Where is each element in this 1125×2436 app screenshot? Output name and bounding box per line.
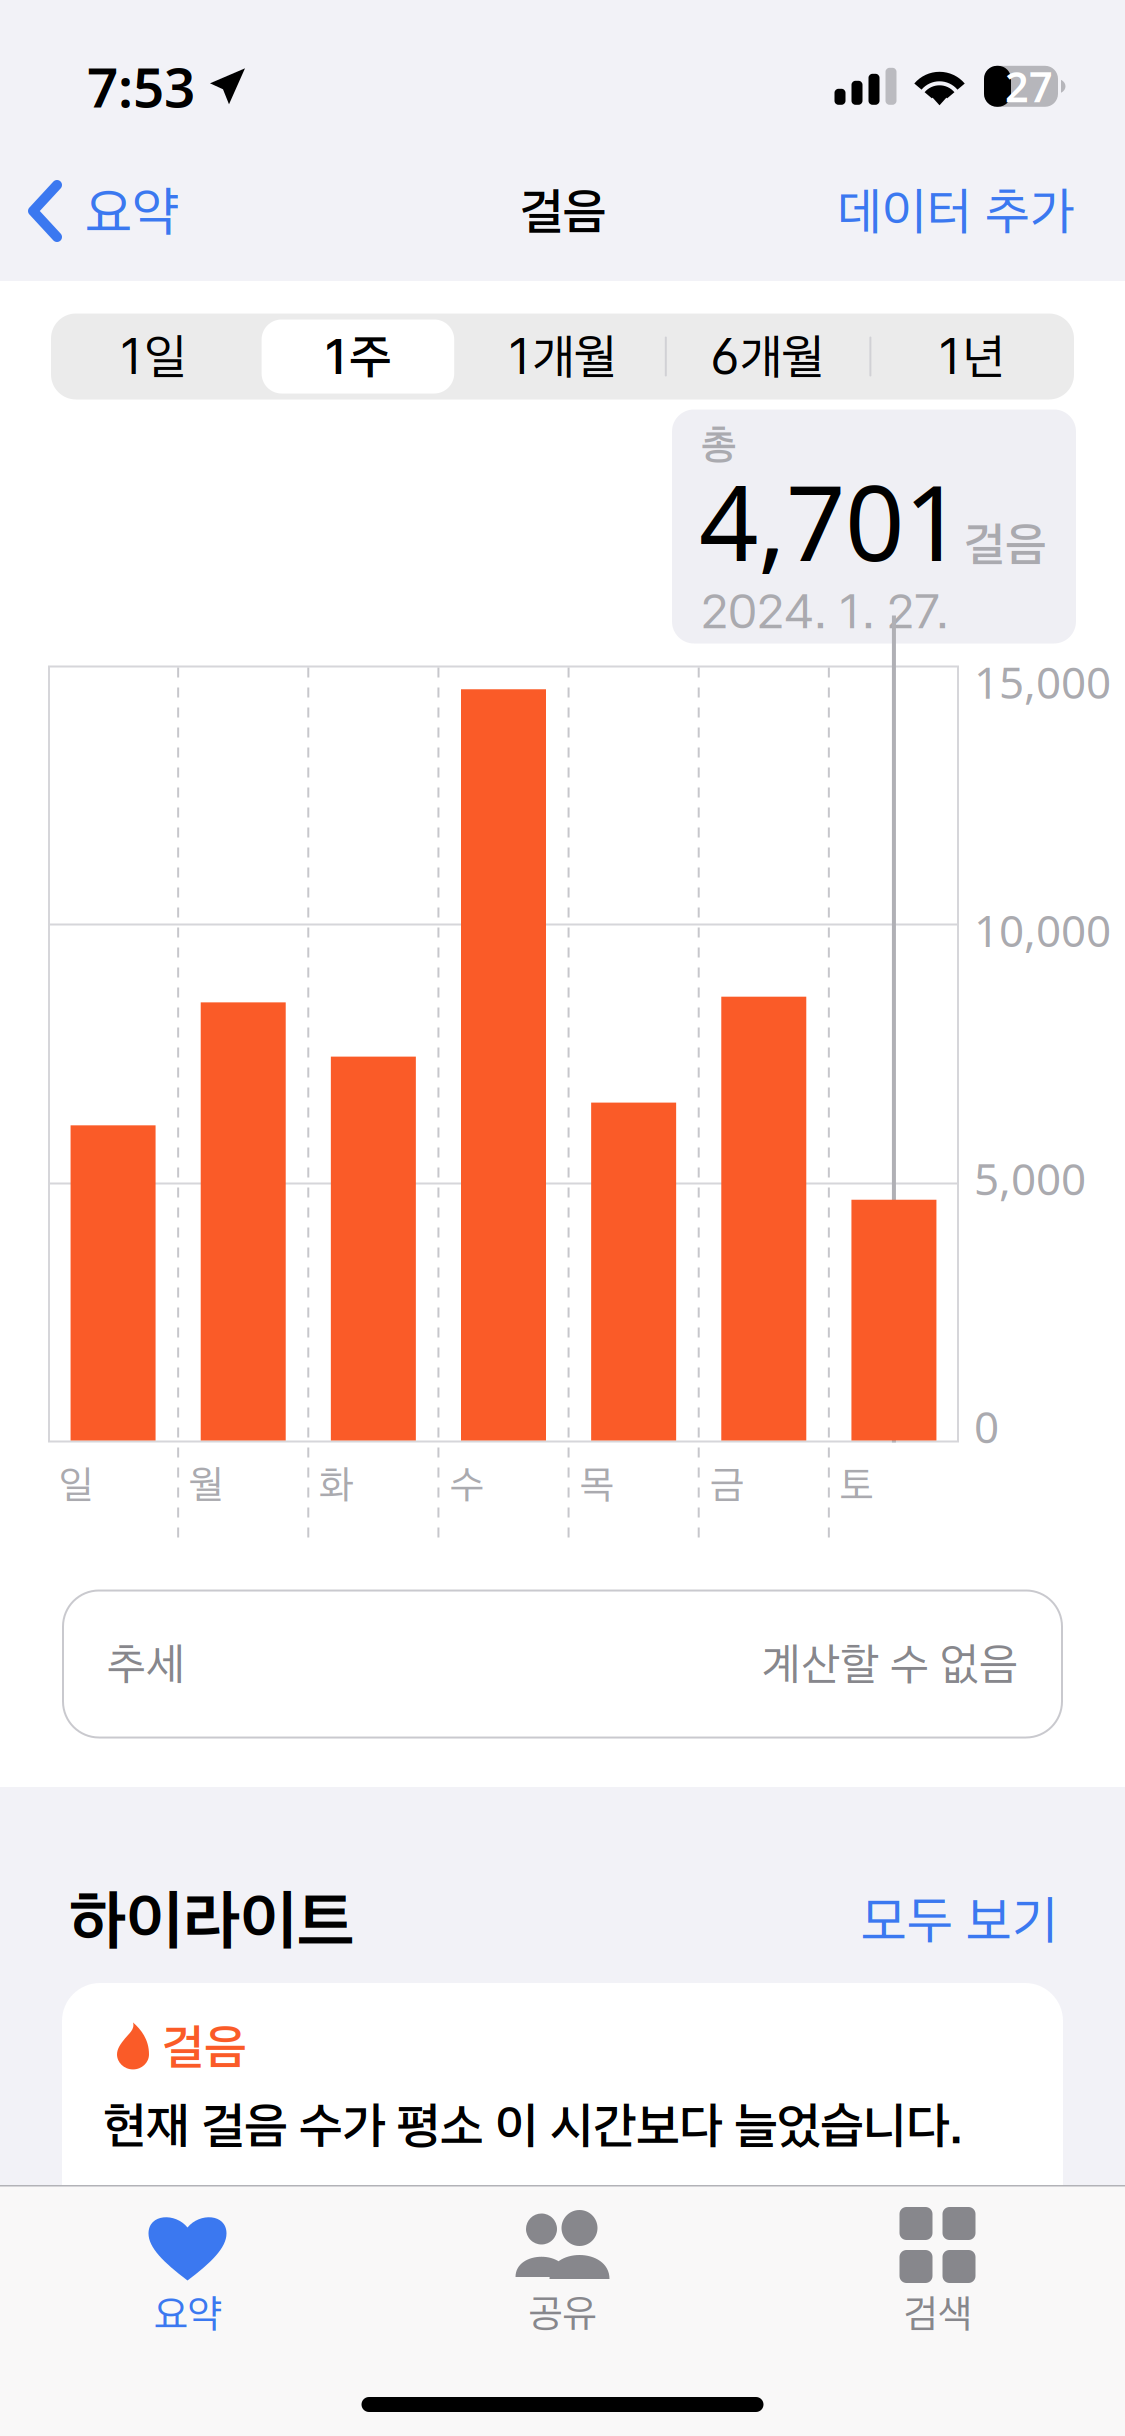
button[interactable]: 검색 (750, 2204, 1125, 2341)
staticText: 2024. 1. 27. (701, 582, 949, 640)
button[interactable]: 요약 (0, 2204, 375, 2341)
staticText: 5,000 (974, 1149, 1086, 1207)
button[interactable]: 1주 (256, 313, 460, 399)
button[interactable]: 1년 (869, 313, 1074, 399)
button[interactable]: 추세 (0, 1542, 1125, 1787)
staticText: 검색 (903, 2289, 971, 2337)
staticText: 10,000 (974, 901, 1111, 959)
staticText: 목 (580, 1460, 614, 1508)
staticText: 데이터 추가 (837, 180, 1075, 242)
button[interactable]: 모두 보기 (851, 1880, 1068, 1960)
staticText: 하이라이트 (69, 1880, 354, 1959)
staticText: 일 (59, 1460, 93, 1508)
button[interactable]: 1개월 (460, 313, 665, 399)
staticText: 월 (189, 1460, 223, 1508)
staticText: 계산할 수 없음 (762, 1637, 1018, 1691)
staticText: 요약 (153, 2289, 221, 2337)
staticText: 토 (840, 1460, 874, 1508)
staticText: 27 (1005, 59, 1053, 114)
button[interactable]: 1일 (51, 313, 256, 399)
button[interactable]: 요약 (0, 160, 193, 262)
staticText: 걸음 (519, 181, 605, 241)
staticText: 추세 (107, 1637, 185, 1691)
staticText: 1주 (325, 327, 391, 386)
staticText: 7:53 (87, 50, 195, 123)
staticText: 수 (449, 1460, 483, 1508)
staticText: 6개월 (710, 327, 824, 386)
staticText: 모두 보기 (861, 1888, 1058, 1952)
staticText: 화 (319, 1460, 353, 1508)
staticText: 1일 (120, 327, 186, 386)
button[interactable]: 공유 (375, 2205, 750, 2341)
staticText: 걸음 (964, 515, 1046, 573)
staticText: 1년 (939, 327, 1005, 386)
staticText: 요약 (85, 178, 179, 244)
staticText: 0 (974, 1397, 999, 1455)
staticText: 걸음 (162, 2017, 246, 2076)
staticText: 4,701 (699, 451, 963, 590)
button[interactable]: 걸음 (0, 1983, 1125, 2283)
staticText: 15,000 (974, 652, 1111, 711)
staticText: 1개월 (508, 327, 616, 386)
staticText: 금 (710, 1460, 744, 1508)
button[interactable]: 데이터 추가 (823, 162, 1125, 260)
button[interactable]: 6개월 (665, 313, 869, 399)
staticText: 공유 (528, 2289, 596, 2337)
staticText: 총 (701, 419, 736, 469)
staticText: 현재 걸음 수가 평소 이 시간보다 늘었습니다. (103, 2095, 963, 2155)
